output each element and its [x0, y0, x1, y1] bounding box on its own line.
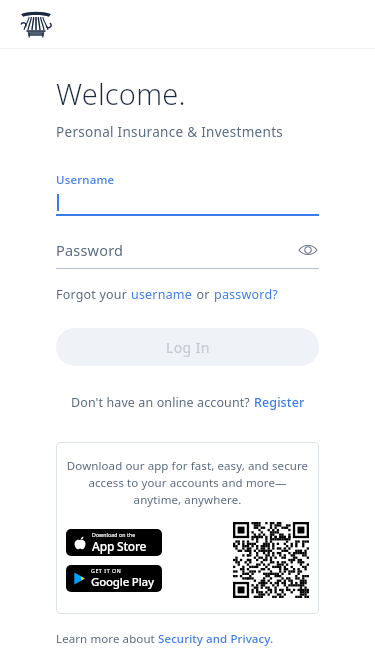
- button[interactable]: Log In: [56, 328, 319, 366]
- staticText: Forgot your: [56, 286, 131, 303]
- staticText: Log In: [166, 338, 210, 357]
- staticText: or: [193, 286, 214, 303]
- button[interactable]: password?: [214, 286, 278, 303]
- staticText: Learn more about: [56, 631, 158, 647]
- staticText: Don't have an online account?: [71, 394, 254, 411]
- staticText: Security and Privacy.: [158, 631, 274, 647]
- staticText: Password: [56, 240, 297, 260]
- button[interactable]: Show password: [297, 239, 319, 261]
- button[interactable]: Download on the App Store: [66, 529, 162, 556]
- button[interactable]: Register: [254, 394, 305, 411]
- staticText: Username: [56, 172, 115, 188]
- staticText: Personal Insurance & Investments: [56, 123, 284, 141]
- staticText: password?: [214, 286, 278, 303]
- button[interactable]: Username: [56, 172, 319, 216]
- button[interactable]: Get it on Google Play: [66, 565, 162, 592]
- staticText: Welcome.: [56, 74, 186, 113]
- button[interactable]: Password: [56, 239, 319, 269]
- staticText: App Store: [92, 538, 147, 554]
- staticText: username: [131, 286, 193, 303]
- staticText: Google Play: [91, 574, 154, 590]
- button[interactable]: Security and Privacy.: [158, 631, 274, 647]
- button[interactable]: username: [131, 286, 193, 303]
- staticText: GET IT ON: [91, 567, 122, 574]
- staticText: Register: [254, 394, 305, 411]
- other: QR code to download the app: [233, 522, 309, 598]
- staticText: Download on the: [92, 531, 136, 538]
- button[interactable]: Home: [19, 9, 53, 39]
- staticText: Download our app for fast, easy, and sec…: [66, 458, 309, 508]
